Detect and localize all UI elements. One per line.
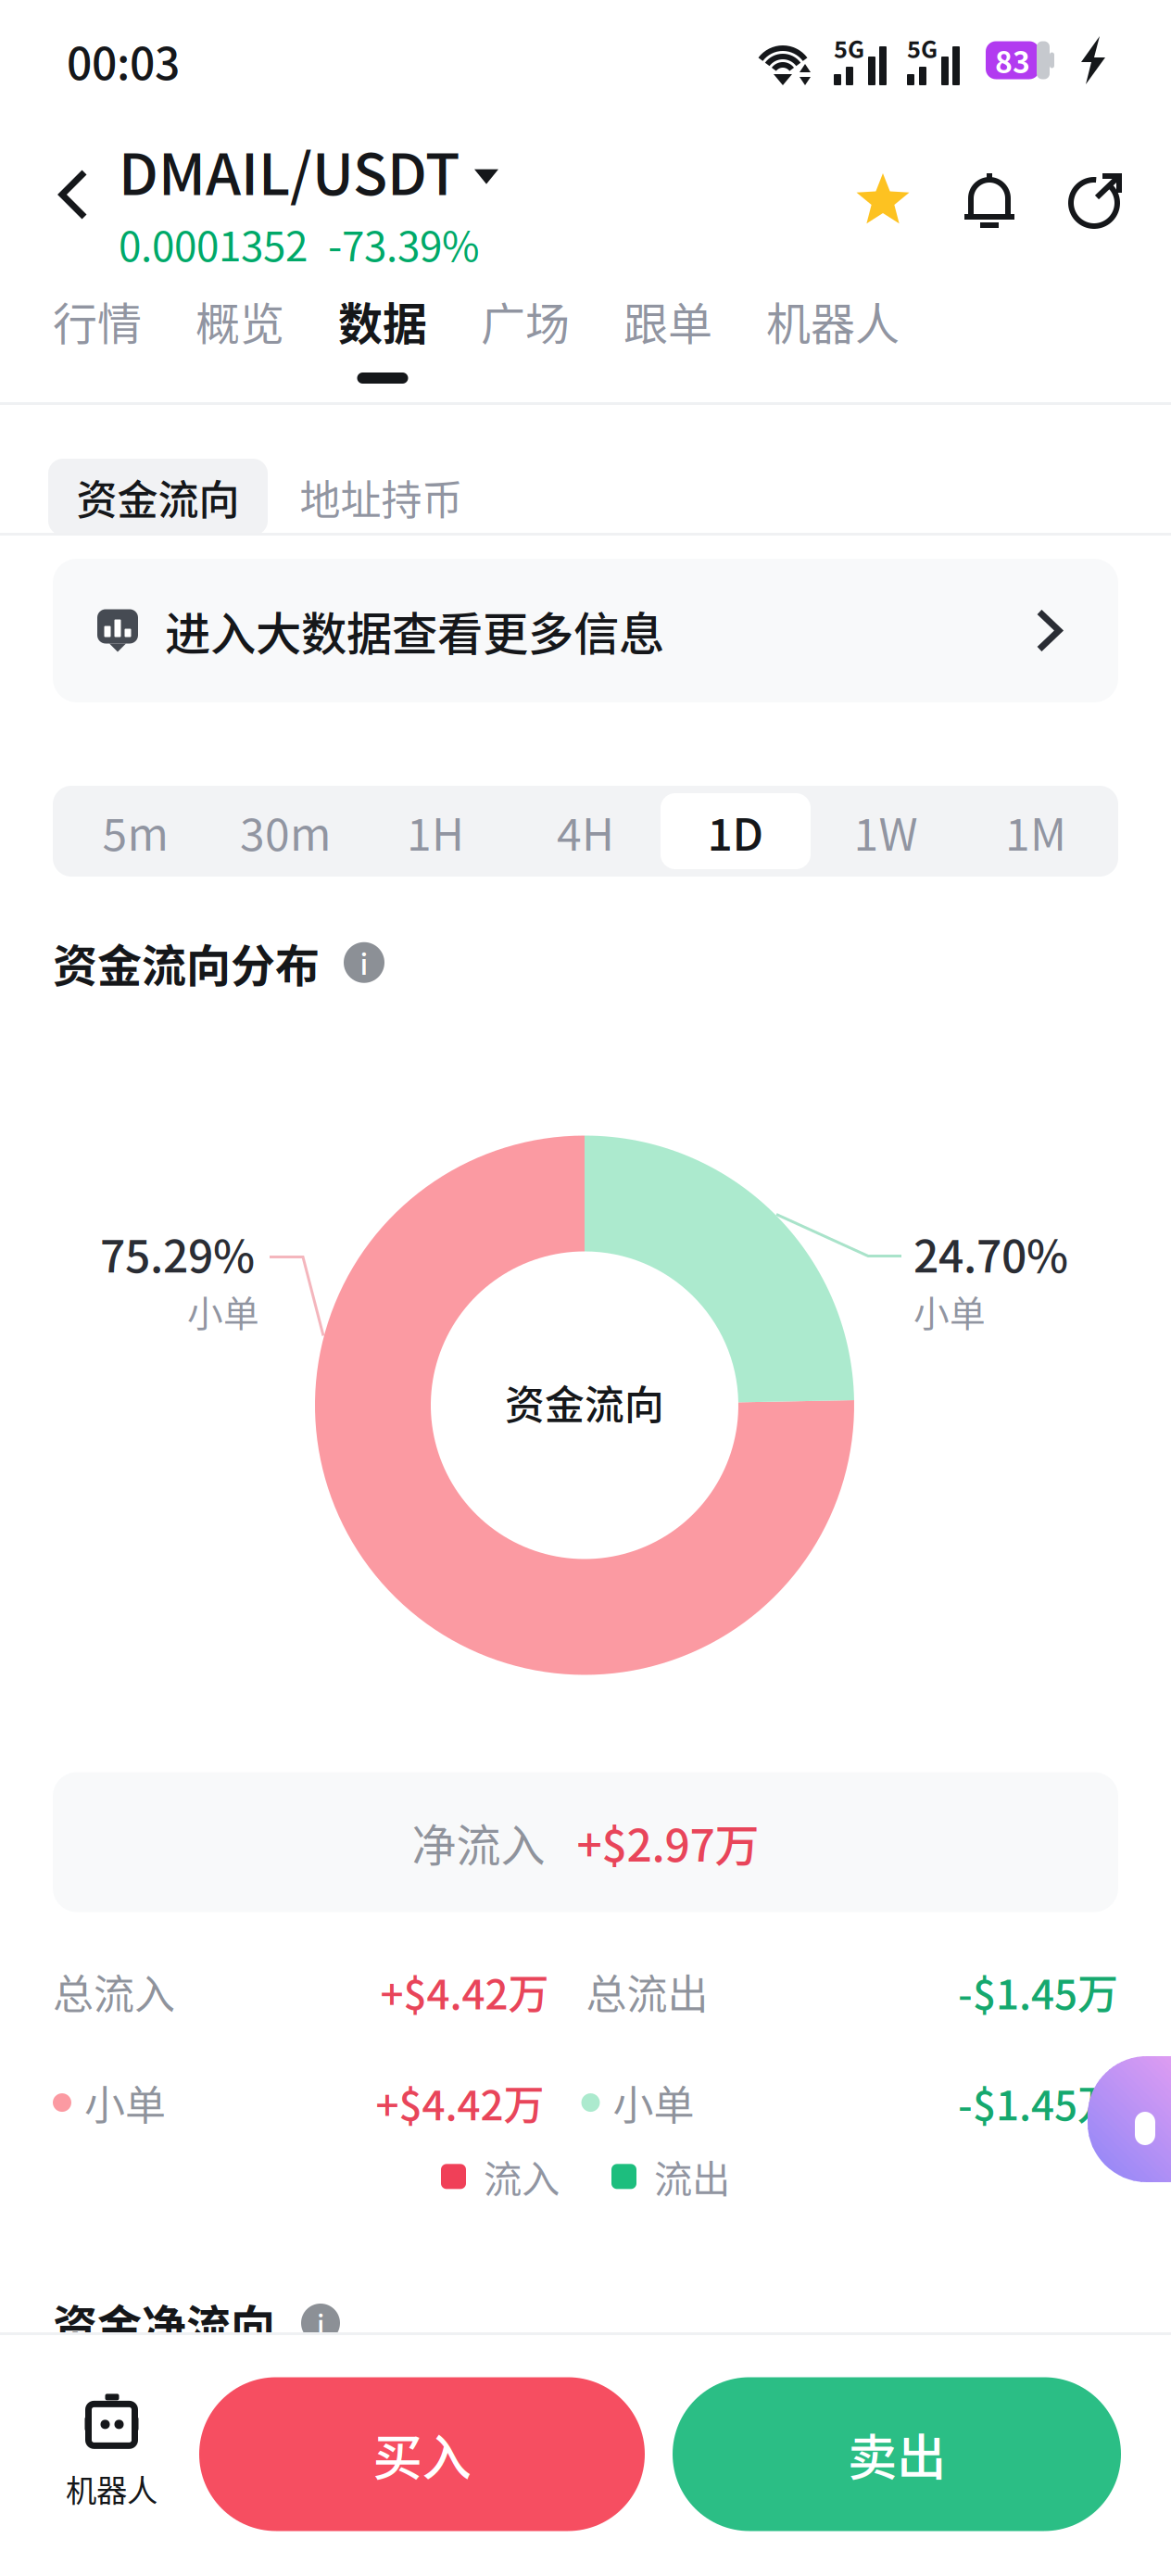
staticText: 总流入 <box>53 1962 175 2021</box>
staticText: 1H <box>407 799 464 863</box>
staticText: 5G <box>907 31 938 65</box>
staticText: 资金流向 <box>76 468 239 527</box>
button[interactable]: 1D <box>661 793 811 869</box>
staticText: 1M <box>1005 799 1066 863</box>
staticText: 资金流向 <box>505 1374 664 1431</box>
staticText: 广场 <box>481 288 570 353</box>
button[interactable]: 进入大数据查看更多信息 <box>0 536 1171 702</box>
button[interactable]: 概览 <box>169 269 311 405</box>
button[interactable]: Favourite <box>854 173 912 229</box>
staticText: 83 <box>995 39 1030 82</box>
staticText: 1W <box>854 799 918 863</box>
staticText: 5G <box>834 31 864 65</box>
button[interactable]: Back <box>37 130 109 259</box>
staticText: 跟单 <box>623 288 712 353</box>
staticText: 机器人 <box>766 288 900 353</box>
button[interactable]: 机器人 <box>0 2332 199 2576</box>
staticText: 流出 <box>654 2149 730 2204</box>
staticText: +$4.42万 <box>376 2073 544 2132</box>
button[interactable]: Share <box>1069 173 1125 229</box>
staticText: 24.70% <box>913 1221 1068 1285</box>
staticText: +$2.97万 <box>577 1810 759 1874</box>
staticText: 进入大数据查看更多信息 <box>165 597 664 664</box>
staticText: -73.39% <box>328 214 480 273</box>
button[interactable]: Alerts <box>964 173 1016 229</box>
button[interactable]: DMAIL/USDT <box>119 129 498 211</box>
staticText: -$1.45万 <box>958 1962 1118 2021</box>
staticText: 5m <box>102 799 168 863</box>
staticText: 小单 <box>84 2073 166 2132</box>
staticText: 资金净流向 <box>53 2291 275 2355</box>
button[interactable]: 数据 <box>311 269 454 405</box>
staticText: 00:03 <box>67 28 180 92</box>
staticText: 买入 <box>373 2418 471 2490</box>
staticText: 4H <box>557 799 614 863</box>
staticText: 小单 <box>187 1285 259 1337</box>
button[interactable]: 30m <box>210 793 360 869</box>
staticText: 数据 <box>338 288 427 353</box>
button[interactable]: 1W <box>811 793 961 869</box>
button[interactable]: 机器人 <box>739 269 926 405</box>
button[interactable]: 1M <box>961 793 1111 869</box>
staticText: 机器人 <box>66 2466 157 2511</box>
staticText: 小单 <box>913 1285 986 1337</box>
staticText: 行情 <box>53 288 142 353</box>
staticText: 卖出 <box>848 2418 946 2490</box>
staticText: 75.29% <box>100 1221 255 1285</box>
button[interactable]: 5m <box>60 793 210 869</box>
button[interactable]: 买入 <box>199 2377 645 2531</box>
staticText: i <box>360 942 368 983</box>
button[interactable]: Info <box>344 942 384 983</box>
button[interactable]: 1H <box>360 793 510 869</box>
button[interactable]: 4H <box>510 793 661 869</box>
button[interactable]: 地址持币 <box>271 459 491 536</box>
staticText: 0.0001352 <box>119 214 308 273</box>
staticText: i <box>317 2303 324 2343</box>
staticText: 小单 <box>613 2073 694 2132</box>
button[interactable]: 卖出 <box>673 2377 1121 2531</box>
staticText: 流入 <box>484 2149 560 2204</box>
button[interactable]: 资金流向 <box>48 459 268 536</box>
staticText: DMAIL/USDT <box>119 129 460 211</box>
button[interactable]: 广场 <box>454 269 597 405</box>
staticText: +$4.42万 <box>380 1962 549 2021</box>
staticText: 30m <box>240 799 331 863</box>
staticText: 地址持币 <box>300 468 463 527</box>
staticText: 资金流向分布 <box>53 930 320 995</box>
staticText: 1D <box>707 799 764 863</box>
staticText: 净流入 <box>412 1810 545 1874</box>
staticText: 概览 <box>195 288 284 353</box>
staticText: 总流出 <box>586 1962 708 2021</box>
staticText: -$1.45万 <box>958 2073 1118 2132</box>
button[interactable]: 跟单 <box>597 269 739 405</box>
button[interactable]: 行情 <box>26 269 169 405</box>
